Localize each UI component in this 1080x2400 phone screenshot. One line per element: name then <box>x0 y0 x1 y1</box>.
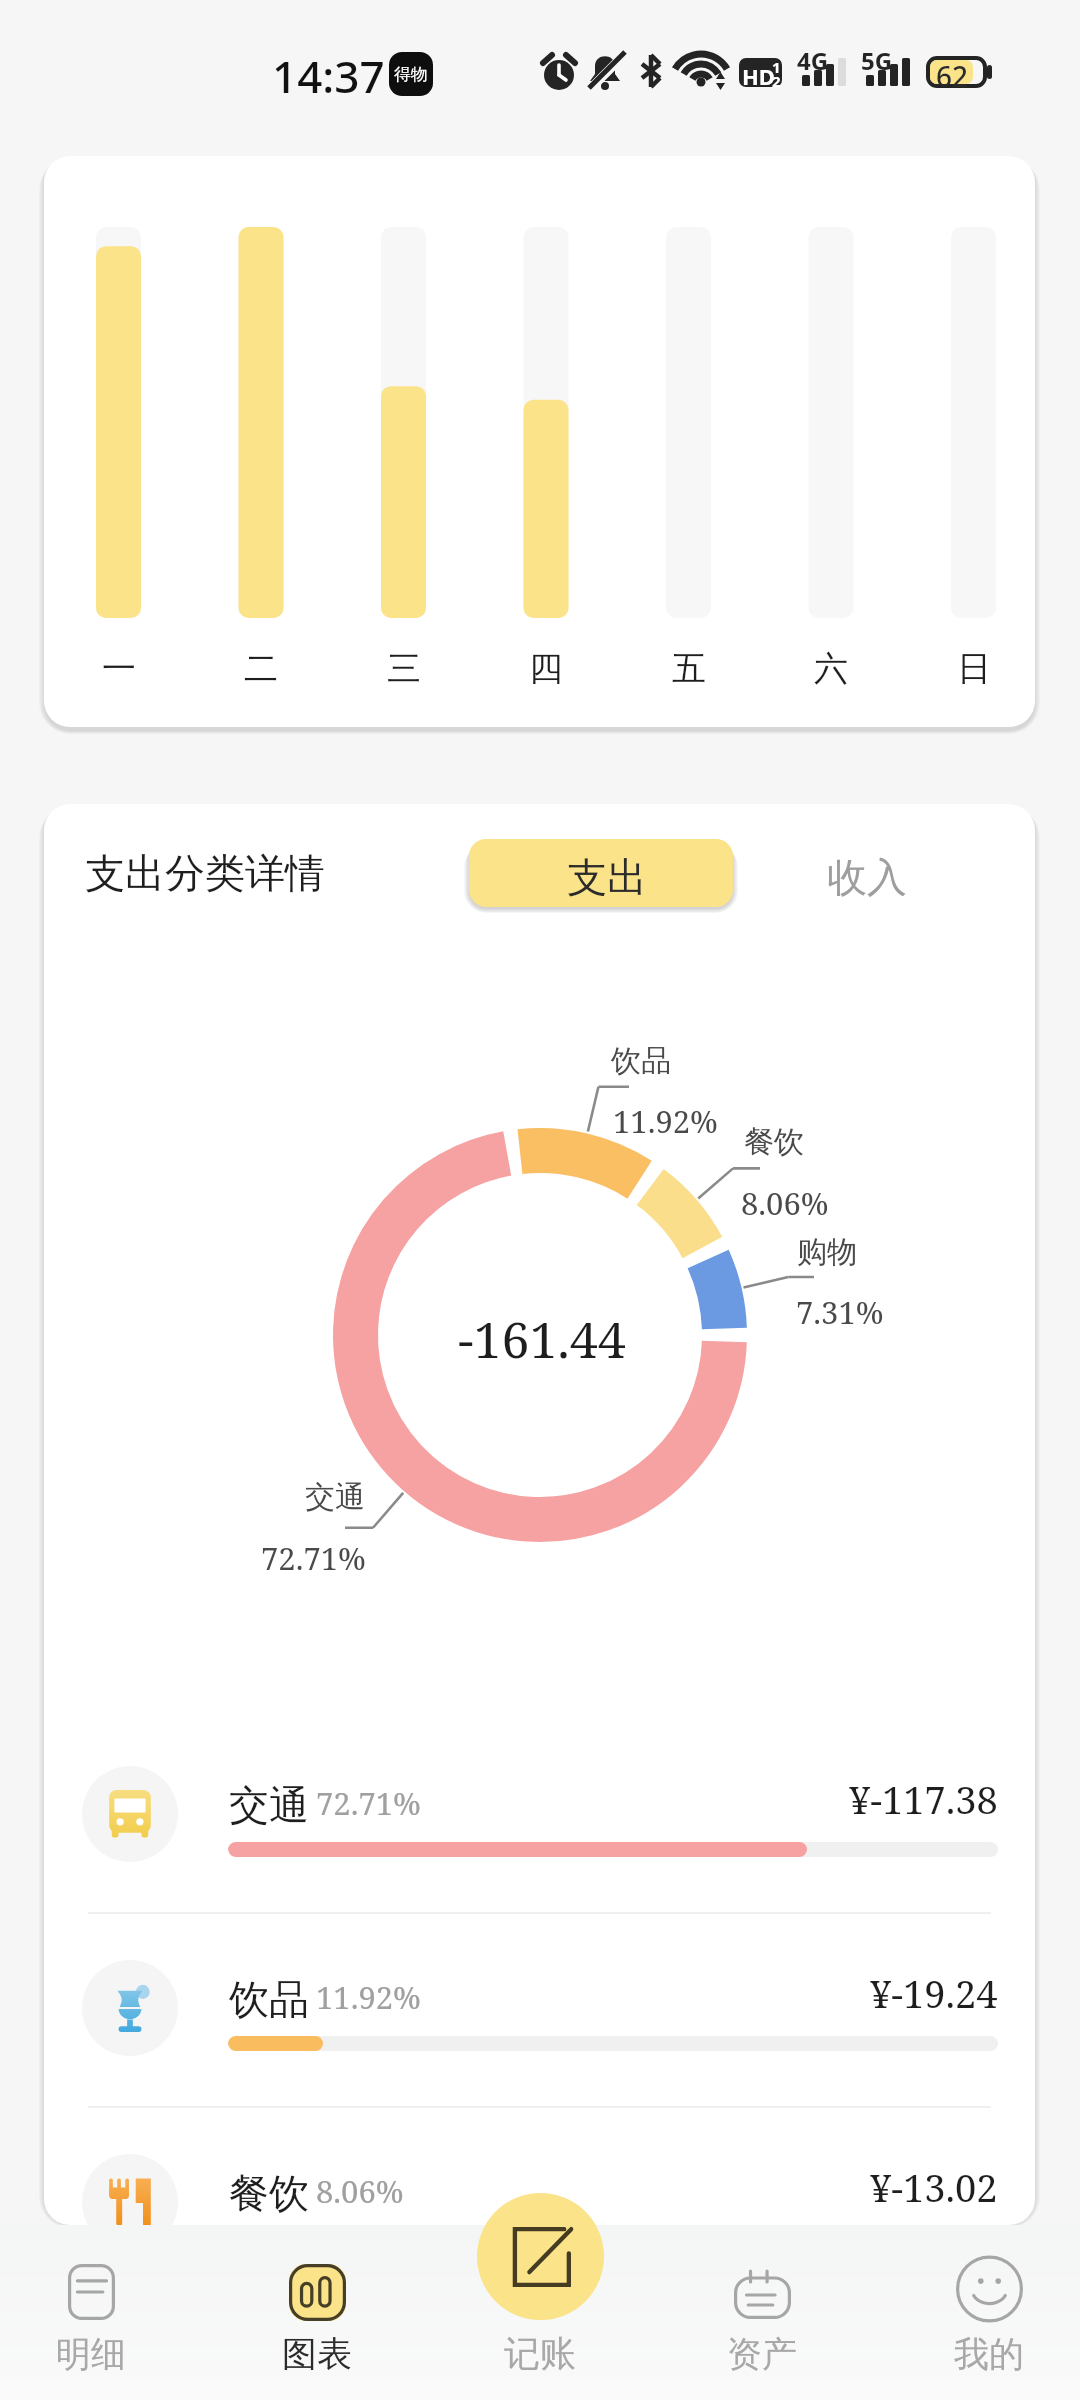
button[interactable]: 支出 <box>469 839 733 907</box>
staticText: 72.71% <box>261 1537 366 1579</box>
staticText: 11.92% <box>316 1976 421 2018</box>
staticText: 2 <box>772 71 781 91</box>
staticText: 支出 <box>567 852 647 902</box>
button[interactable]: 我的 <box>877 2240 1080 2400</box>
staticText: 五 <box>672 647 706 690</box>
staticText: 三 <box>387 647 421 690</box>
staticText: 交通 <box>229 1780 309 1830</box>
other: 记账 <box>477 2193 604 2320</box>
staticText: 5G <box>861 44 893 77</box>
staticText: 图表 <box>282 2332 352 2376</box>
staticText: 记账 <box>504 2331 576 2376</box>
staticText: 购物 <box>797 1233 857 1271</box>
staticText: 4G <box>797 44 829 77</box>
staticText: 72.71% <box>316 1782 421 1824</box>
staticText: 1 <box>772 57 781 77</box>
staticText: 8.06% <box>316 2170 404 2212</box>
staticText: 一 <box>102 647 136 690</box>
staticText: 我的 <box>954 2332 1024 2376</box>
staticText: 六 <box>814 647 848 690</box>
staticText: HD <box>742 61 775 91</box>
staticText: 日 <box>957 647 991 690</box>
staticText: 62 <box>936 57 969 95</box>
staticText: 餐饮 <box>744 1123 804 1161</box>
staticText: ¥-19.24 <box>870 1967 998 2019</box>
staticText: 11.92% <box>613 1100 718 1142</box>
staticText: 二 <box>244 647 278 690</box>
staticText: 饮品 <box>229 1974 309 2024</box>
button[interactable]: 饮品 <box>44 1913 1035 2107</box>
staticText: 8.06% <box>741 1182 829 1224</box>
staticText: 明细 <box>56 2332 126 2376</box>
staticText: 资产 <box>727 2332 797 2376</box>
staticText: -161.44 <box>458 1305 626 1373</box>
staticText: 四 <box>529 647 563 690</box>
button[interactable]: 资产 <box>650 2240 874 2400</box>
staticText: 得物 <box>394 64 428 85</box>
staticText: 14:37 <box>272 46 385 106</box>
staticText: 饮品 <box>611 1042 671 1080</box>
staticText: 收入 <box>827 852 907 902</box>
staticText: 交通 <box>305 1478 365 1516</box>
staticText: 支出分类详情 <box>85 848 325 898</box>
button[interactable]: 收入 <box>783 839 963 907</box>
button[interactable]: 餐饮 <box>44 2107 1035 2225</box>
button[interactable]: 明细 <box>0 2240 203 2400</box>
staticText: ¥-117.38 <box>849 1773 998 1825</box>
button[interactable]: 交通 <box>44 1719 1035 1913</box>
button[interactable]: 记账 <box>428 2193 652 2400</box>
staticText: ¥-13.02 <box>870 2161 998 2213</box>
staticText: 7.31% <box>796 1291 884 1333</box>
button[interactable]: 图表 <box>205 2240 429 2400</box>
staticText: 餐饮 <box>229 2168 309 2218</box>
